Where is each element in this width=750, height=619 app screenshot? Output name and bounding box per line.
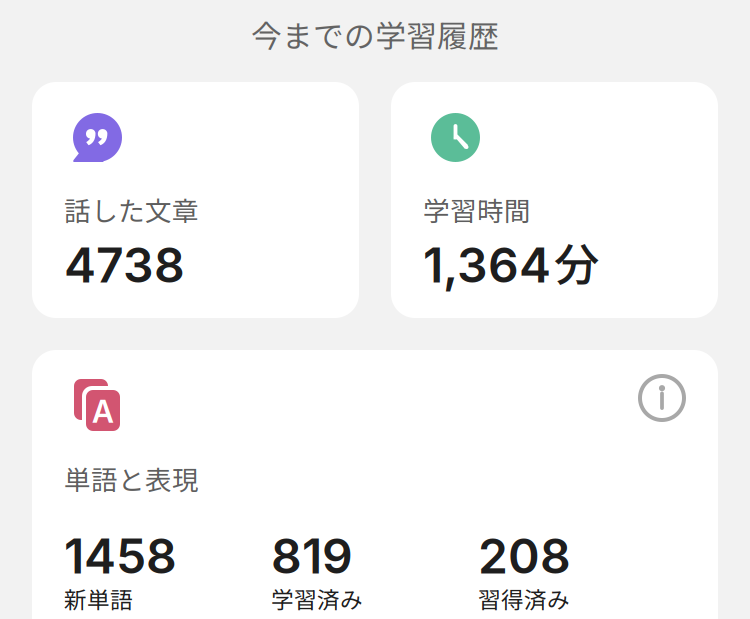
staticText: 1458 <box>64 527 177 585</box>
staticText: 単語と表現 <box>64 459 199 498</box>
staticText: A <box>92 393 114 430</box>
staticText: 4738 <box>64 236 185 294</box>
staticText: 今までの学習履歴 <box>251 12 499 56</box>
button[interactable]: 学習時間 <box>391 82 718 318</box>
staticText: 習得済み <box>478 582 570 615</box>
button[interactable]: 話した文章 <box>32 82 359 318</box>
staticText: 新単語 <box>64 582 133 615</box>
button[interactable]: A <box>32 350 718 619</box>
staticText: 学習時間 <box>423 190 531 229</box>
staticText: 208 <box>478 527 571 585</box>
staticText: 学習済み <box>271 582 363 615</box>
staticText: 819 <box>271 527 353 585</box>
staticText: 話した文章 <box>64 190 199 229</box>
staticText: 分 <box>554 229 599 295</box>
staticText: 1,364 <box>423 236 551 294</box>
